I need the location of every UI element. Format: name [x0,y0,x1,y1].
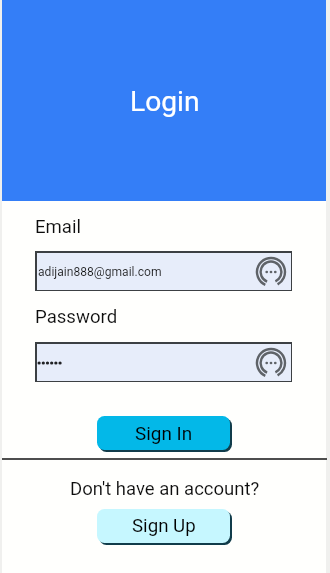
staticText: Login [130,85,200,118]
button[interactable]: Autofill suggestions [255,256,287,288]
staticText: Password [35,306,118,328]
button[interactable]: Password field [35,342,292,382]
button[interactable]: Sign Up [97,509,230,543]
button[interactable]: Sign In [97,416,230,450]
button[interactable]: Autofill suggestions [255,347,287,379]
staticText: Email [35,216,82,238]
staticText: Sign In [135,422,193,444]
staticText: adijain888@gmail.com [38,265,162,279]
button[interactable]: Email field [35,251,292,291]
staticText: Don't have an account? [70,478,260,500]
staticText: Sign Up [132,515,196,537]
